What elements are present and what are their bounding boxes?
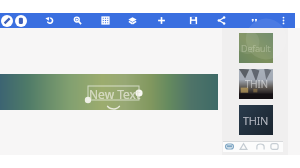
button[interactable]: THIN: [239, 105, 273, 135]
button[interactable]: Arch: [254, 141, 266, 152]
button[interactable]: Draw: [1, 15, 13, 27]
button[interactable]: THIN: [239, 69, 273, 99]
button[interactable]: New Text: [0, 74, 218, 110]
button[interactable]: Save: [184, 13, 202, 28]
button[interactable]: Stamp: [223, 141, 235, 152]
button[interactable]: Triangle: [237, 141, 249, 152]
button[interactable]: Undo: [40, 13, 58, 28]
button[interactable]: Add: [152, 13, 170, 28]
button[interactable]: Zoom: [68, 13, 86, 28]
staticText: THIN: [243, 113, 269, 128]
button[interactable]: Share: [212, 13, 230, 28]
button[interactable]: More options: [274, 13, 292, 28]
button[interactable]: Text style: [245, 13, 263, 28]
staticText: Default: [241, 42, 271, 54]
staticText: THIN: [245, 77, 268, 91]
button[interactable]: Shape: [15, 15, 27, 27]
button[interactable]: Grid: [96, 13, 114, 28]
button[interactable]: Default: [239, 33, 273, 63]
button[interactable]: Rounded square: [268, 141, 280, 152]
staticText: New Text: [89, 86, 141, 102]
button[interactable]: Layers: [123, 13, 141, 28]
